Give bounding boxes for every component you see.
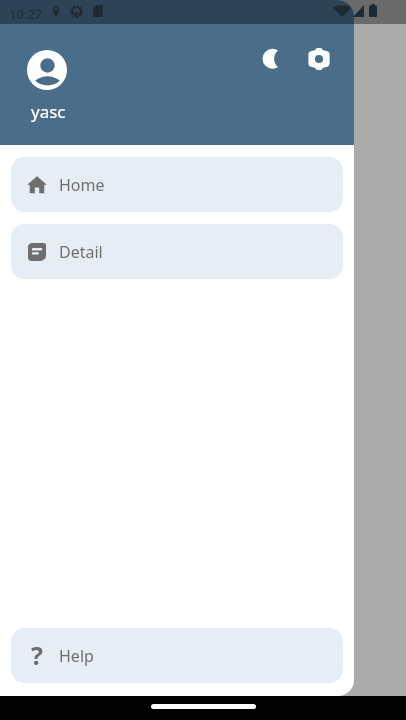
button[interactable]: Settings xyxy=(307,47,331,71)
button[interactable]: Toggle dark theme xyxy=(261,47,285,71)
button[interactable]: Home xyxy=(11,157,343,212)
staticText: ? xyxy=(31,638,43,672)
staticText: Detail xyxy=(59,241,103,263)
staticText: yasc xyxy=(31,100,66,123)
button[interactable]: Detail xyxy=(11,224,343,279)
staticText: 10:27 xyxy=(9,5,43,23)
staticText: Help xyxy=(59,645,94,667)
button[interactable]: ? xyxy=(11,628,343,683)
staticText: Home xyxy=(59,174,105,196)
